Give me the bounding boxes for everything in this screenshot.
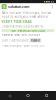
staticText: solution.com: [8, 4, 29, 9]
staticText: 9:41: [50, 0, 54, 3]
staticText: Check that there is a code sent to: [2, 25, 44, 28]
staticText: Resend: [31, 39, 40, 42]
button[interactable]: Home: [19, 91, 37, 100]
staticText: Didn't get the code?: [2, 39, 29, 42]
button[interactable]: Back: [0, 91, 19, 100]
staticText: VERIFY YOUR EMAIL: [2, 20, 33, 24]
staticText: S: [3, 4, 5, 9]
staticText: We're not sure if this is you, but we: [2, 11, 52, 15]
button[interactable]: Resend: [30, 38, 41, 43]
staticText: Please check your spam folder too.: [2, 44, 46, 47]
staticText: need to verify your email address.: [2, 15, 49, 18]
staticText: Receive an email with the code: [2, 33, 40, 37]
button[interactable]: Recents: [37, 91, 56, 100]
button[interactable]: More options: [50, 4, 54, 10]
staticText: ◁: [8, 93, 11, 98]
staticText: GET VERIFICATION CODE: [11, 29, 44, 32]
button[interactable]: GET VERIFICATION CODE: [2, 29, 54, 32]
